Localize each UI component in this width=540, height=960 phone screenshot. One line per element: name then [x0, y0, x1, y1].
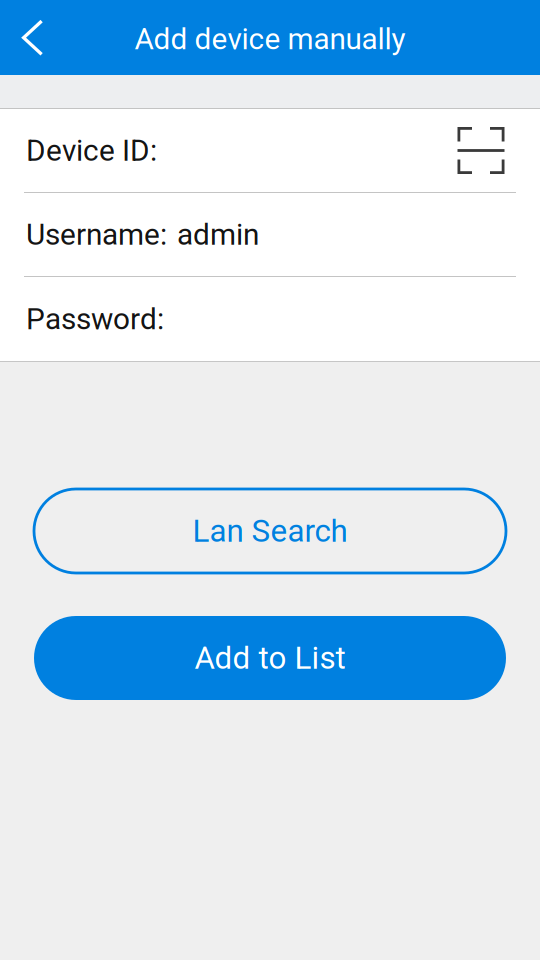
button[interactable]: Username:: [0, 193, 540, 276]
button[interactable]: Add to List: [34, 616, 506, 700]
staticText: admin: [177, 217, 259, 252]
staticText: Lan Search: [192, 513, 347, 549]
button[interactable]: Lan Search: [34, 489, 506, 573]
button[interactable]: Scan QR code: [453, 109, 509, 192]
staticText: Device ID:: [26, 133, 157, 168]
button[interactable]: Password:: [0, 277, 540, 361]
button[interactable]: Device ID:: [0, 109, 540, 192]
staticText: Add to List: [194, 640, 345, 676]
staticText: Password:: [26, 302, 164, 336]
staticText: Username:: [26, 217, 167, 252]
button[interactable]: Back: [0, 0, 65, 75]
staticText: Add device manually: [134, 22, 405, 56]
